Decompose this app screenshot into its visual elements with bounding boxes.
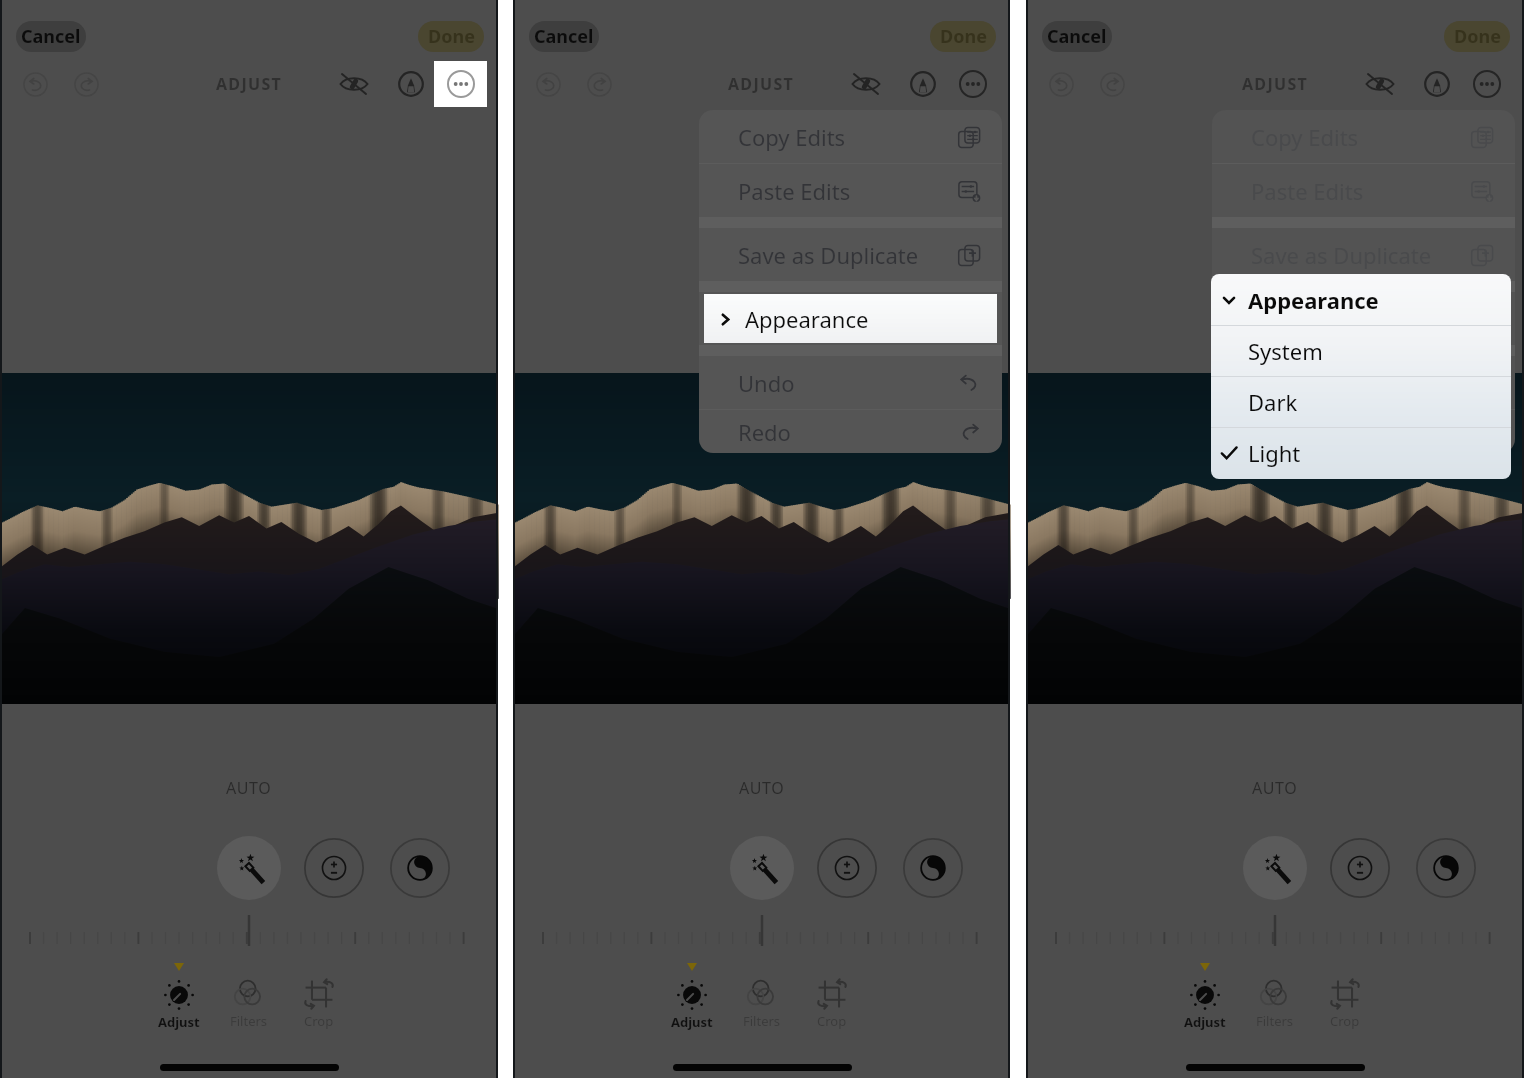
button[interactable]: Appearance [704,294,997,343]
button[interactable]: Redo [586,71,613,98]
staticText: ADJUST [728,73,795,95]
button[interactable]: Done [418,21,484,52]
staticText: Undo [738,368,795,398]
staticText: Filters [743,1012,781,1030]
button[interactable]: Markup [396,69,426,99]
button[interactable]: Redo [73,71,100,98]
button[interactable]: Save as Duplicate [699,228,1002,281]
button[interactable]: More options [946,61,999,107]
button[interactable]: Hide adjustments [337,67,371,101]
staticText: Copy Edits [738,122,846,152]
button[interactable]: Undo [535,71,562,98]
button[interactable]: Done [1444,21,1510,52]
button[interactable]: Filters [1242,963,1308,1039]
staticText: Paste Edits [738,176,851,206]
staticText: System [1248,336,1323,366]
staticText: Done [1454,24,1501,49]
button[interactable]: Redo [699,410,1002,453]
staticText: Done [940,24,987,49]
staticText: AUTO [1252,777,1298,799]
staticText: ADJUST [1242,73,1309,95]
button[interactable]: Brilliance [388,836,452,900]
button[interactable]: Undo [22,71,49,98]
button[interactable]: Exposure [1328,836,1392,900]
staticText: Undo [1251,368,1308,398]
staticText: AUTO [226,777,272,799]
staticText: Appearance [1248,285,1379,315]
staticText: Redo [1251,417,1304,447]
button[interactable]: Copy Edits [699,110,1002,163]
button[interactable]: Crop [799,963,865,1039]
button[interactable]: Cancel [529,21,599,52]
button[interactable]: Done [930,21,996,52]
staticText: Cancel [534,24,594,49]
button[interactable]: Undo [699,356,1002,409]
button[interactable]: Redo [1099,71,1126,98]
button[interactable]: Crop [286,963,352,1039]
staticText: Save as Duplicate [1251,240,1432,270]
button[interactable]: Undo [1212,356,1515,409]
staticText: Save as Duplicate [738,240,919,270]
button[interactable]: Brilliance [901,836,965,900]
staticText: Adjust [158,1013,200,1031]
button[interactable]: Markup [1422,69,1452,99]
staticText: Done [428,24,475,49]
staticText: Adjust [671,1013,713,1031]
staticText: Redo [738,417,791,447]
button[interactable]: Exposure [302,836,366,900]
button[interactable]: Filters [216,963,282,1039]
button[interactable]: Adjust [1172,963,1238,1039]
button[interactable]: Hide adjustments [1363,67,1397,101]
staticText: Light [1248,438,1301,468]
button[interactable]: Redo [1212,410,1515,453]
staticText: Crop [304,1012,334,1030]
staticText: Cancel [21,24,81,49]
button[interactable]: Undo [1048,71,1075,98]
button[interactable]: More options [1460,61,1513,107]
button[interactable]: Brilliance [1414,836,1478,900]
staticText: Filters [1256,1012,1294,1030]
button[interactable]: Markup [908,69,938,99]
staticText: ADJUST [216,73,283,95]
staticText: Crop [817,1012,847,1030]
button[interactable]: Exposure [815,836,879,900]
button[interactable]: Auto enhance [217,836,281,900]
staticText: Copy Edits [1251,122,1359,152]
button[interactable]: Paste Edits [699,164,1002,217]
button[interactable]: Save as Duplicate [1212,228,1515,281]
button[interactable]: Dark [1211,377,1511,427]
staticText: Paste Edits [1251,176,1364,206]
button[interactable]: More options [434,61,487,107]
staticText: Dark [1248,387,1298,417]
staticText: Filters [230,1012,268,1030]
button[interactable]: Appearance [1211,274,1511,325]
button[interactable]: System [1211,326,1511,376]
button[interactable]: Cancel [1042,21,1112,52]
button[interactable]: Adjust [146,963,212,1039]
button[interactable]: Auto enhance [730,836,794,900]
staticText: AUTO [739,777,785,799]
button[interactable]: Adjust [659,963,725,1039]
staticText: Crop [1330,1012,1360,1030]
button[interactable]: Hide adjustments [849,67,883,101]
staticText: Adjust [1184,1013,1226,1031]
button[interactable]: Auto enhance [1243,836,1307,900]
button[interactable]: Light [1211,428,1511,478]
staticText: Appearance [745,304,869,334]
button[interactable]: Crop [1312,963,1378,1039]
button[interactable]: Cancel [16,21,86,52]
button[interactable]: Filters [729,963,795,1039]
staticText: Cancel [1047,24,1107,49]
